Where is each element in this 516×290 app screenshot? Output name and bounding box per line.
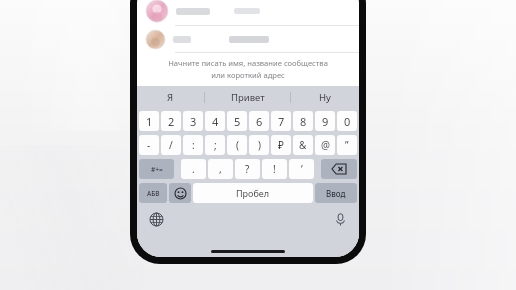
staticText: - (147, 138, 151, 152)
button[interactable]: / (161, 135, 181, 155)
button[interactable]: 6 (249, 111, 269, 131)
button[interactable]: 4 (205, 111, 225, 131)
staticText: Ввод (326, 188, 346, 199)
staticText: ; (214, 138, 217, 152)
staticText: 1 (146, 114, 153, 129)
staticText: / (169, 138, 173, 152)
staticText: Я (167, 91, 174, 104)
button[interactable]: АБВ (139, 183, 167, 203)
staticText: или короткий адрес (211, 70, 285, 80)
button[interactable]: ! (262, 159, 287, 179)
button[interactable]: Backspace (321, 159, 357, 179)
staticText: 9 (322, 114, 329, 129)
staticText: 5 (234, 114, 241, 129)
staticText: @ (321, 138, 330, 152)
staticText: Привет (231, 91, 265, 104)
button[interactable]: , (208, 159, 233, 179)
button[interactable]: : (183, 135, 203, 155)
button[interactable]: 1 (139, 111, 159, 131)
button[interactable]: Dictation (331, 210, 349, 228)
button[interactable]: ; (205, 135, 225, 155)
button[interactable]: 7 (271, 111, 291, 131)
staticText: Ну (319, 91, 331, 104)
staticText: ₽ (278, 138, 284, 152)
button[interactable]: ₽ (271, 135, 291, 155)
staticText: #+= (151, 165, 163, 174)
staticText: : (192, 138, 195, 152)
staticText: 4 (212, 114, 219, 129)
staticText: ’ (301, 162, 303, 176)
button[interactable]: 0 (337, 111, 357, 131)
staticText: ? (245, 162, 250, 176)
button[interactable]: ) (249, 135, 269, 155)
button[interactable]: 9 (315, 111, 335, 131)
button[interactable]: @ (315, 135, 335, 155)
button[interactable]: Я (137, 86, 204, 109)
button[interactable]: - (139, 135, 159, 155)
staticText: 8 (300, 114, 307, 129)
staticText: 3 (190, 114, 197, 129)
button[interactable]: & (293, 135, 313, 155)
button[interactable]: 8 (293, 111, 313, 131)
button[interactable]: Emoji (169, 183, 191, 203)
staticText: Пробел (236, 187, 270, 199)
button[interactable]: Ввод (315, 183, 357, 203)
button[interactable]: Привет (205, 86, 290, 109)
button[interactable]: #+= (139, 159, 174, 179)
staticText: 2 (168, 114, 175, 129)
staticText: 6 (256, 114, 263, 129)
staticText: ) (258, 138, 261, 152)
staticText: АБВ (147, 189, 160, 198)
button[interactable]: 5 (227, 111, 247, 131)
button[interactable]: ? (235, 159, 260, 179)
button[interactable]: ’ (289, 159, 314, 179)
button[interactable]: Ну (291, 86, 359, 109)
staticText: ” (345, 138, 349, 152)
staticText: 0 (344, 114, 351, 129)
button[interactable]: . (181, 159, 206, 179)
button[interactable]: Change language (147, 210, 165, 228)
staticText: Начните писать имя, название сообщества (168, 58, 328, 68)
button[interactable] (137, 26, 359, 52)
button[interactable]: ” (337, 135, 357, 155)
staticText: ( (236, 138, 239, 152)
staticText: 7 (278, 114, 285, 129)
button[interactable]: Пробел (193, 183, 313, 203)
staticText: . (192, 162, 195, 176)
staticText: & (299, 138, 307, 152)
button[interactable]: ( (227, 135, 247, 155)
staticText: ! (273, 162, 276, 176)
staticText: , (219, 162, 222, 176)
button[interactable]: 3 (183, 111, 203, 131)
button[interactable] (137, 0, 359, 25)
button[interactable]: 2 (161, 111, 181, 131)
